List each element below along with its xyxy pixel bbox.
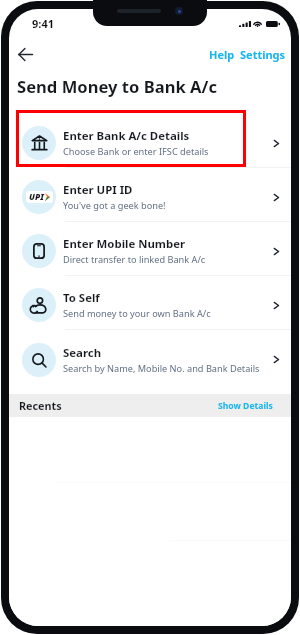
- staticText: Show Details: [218, 400, 273, 412]
- button[interactable]: Back: [11, 40, 39, 68]
- button[interactable]: UPI: [9, 168, 291, 222]
- staticText: Enter Bank A/c Details: [63, 128, 190, 144]
- button[interactable]: To Self: [9, 276, 291, 330]
- staticText: Enter UPI ID: [63, 182, 133, 198]
- staticText: Search by Name, Mobile No. and Bank Deta…: [63, 362, 260, 375]
- staticText: 9:41: [32, 16, 54, 31]
- staticText: Direct transfer to linked Bank A/c: [63, 253, 206, 266]
- staticText: To Self: [63, 290, 100, 306]
- staticText: Settings: [240, 47, 286, 62]
- staticText: Send money to your own Bank A/c: [63, 307, 211, 320]
- staticText: You've got a geek bone!: [63, 199, 166, 212]
- button[interactable]: Help: [205, 42, 236, 67]
- button[interactable]: Enter Bank A/c Details: [9, 114, 291, 168]
- staticText: UPI: [29, 191, 44, 203]
- staticText: Recents: [19, 398, 62, 413]
- staticText: Help: [209, 47, 235, 62]
- button[interactable]: Show Details: [218, 396, 291, 416]
- button[interactable]: Enter Mobile Number: [9, 222, 291, 276]
- button[interactable]: Search: [9, 330, 291, 384]
- button[interactable]: Settings: [236, 42, 290, 67]
- staticText: Choose Bank or enter IFSC details: [63, 145, 209, 158]
- staticText: Enter Mobile Number: [63, 236, 186, 252]
- staticText: Search: [63, 345, 102, 361]
- staticText: Send Money to Bank A/c: [17, 75, 217, 98]
